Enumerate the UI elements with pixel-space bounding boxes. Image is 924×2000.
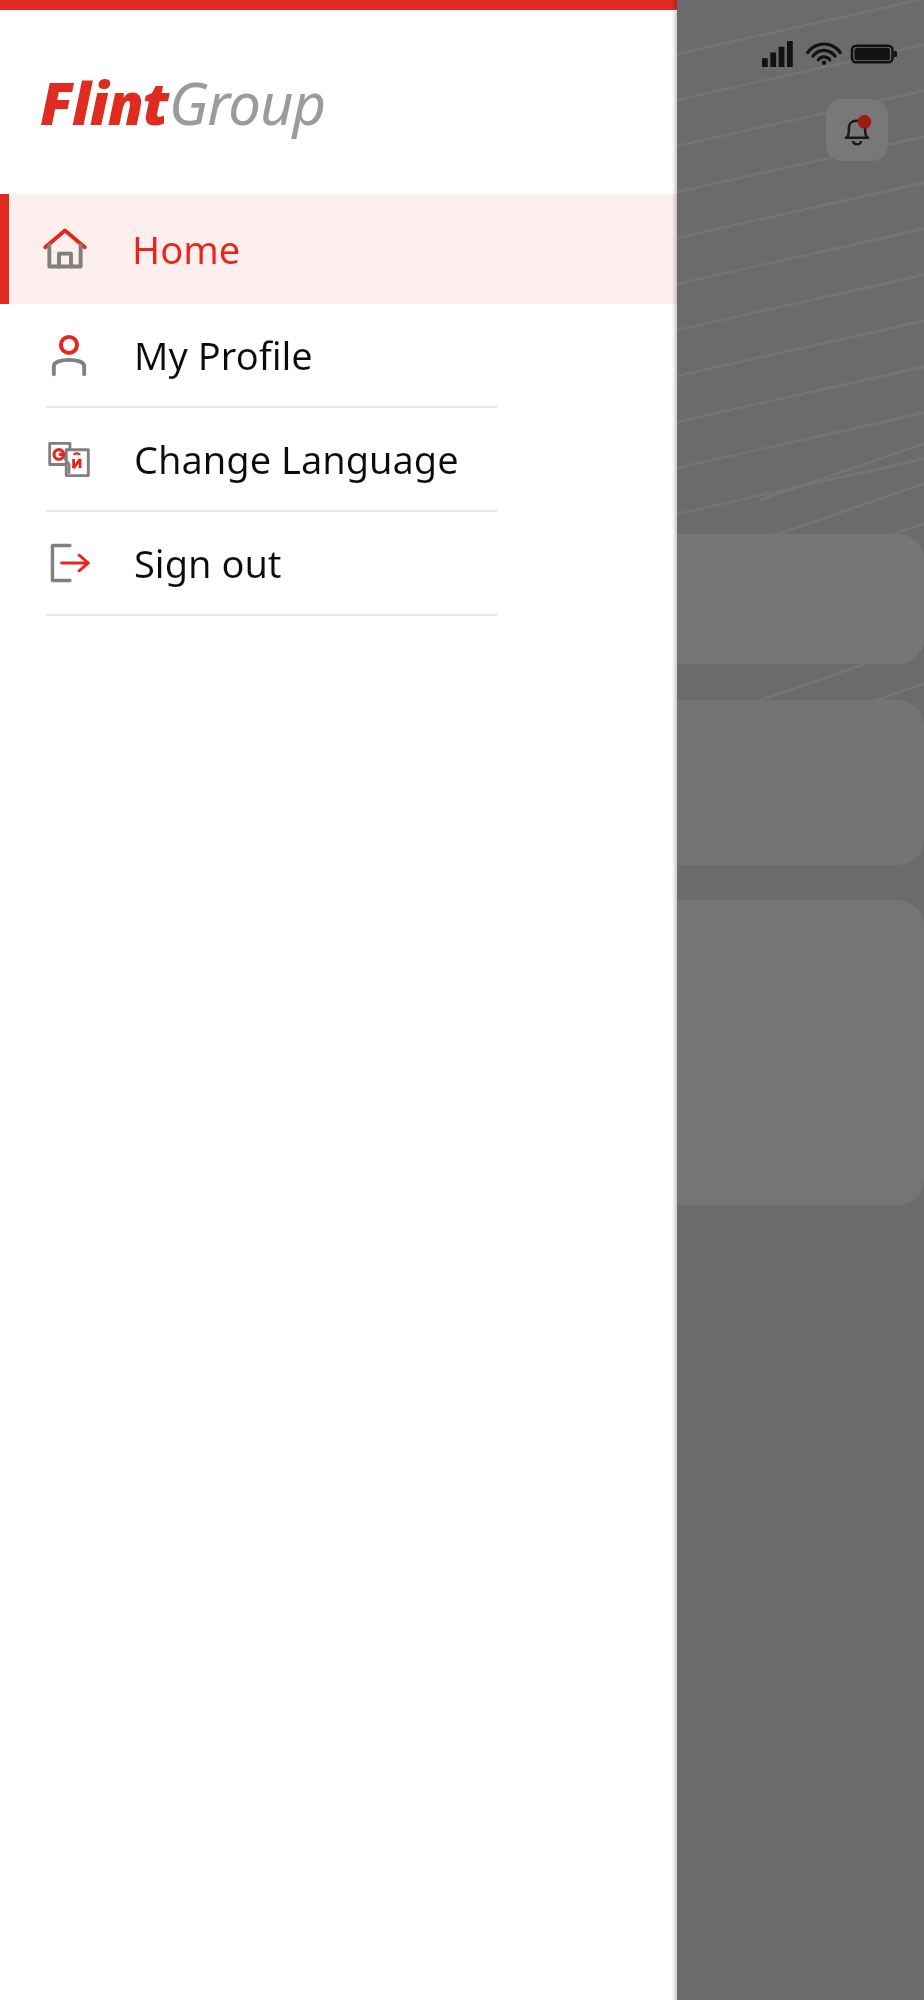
staticText: Home — [132, 223, 241, 275]
staticText: My Profile — [134, 329, 313, 381]
staticText: Change Language — [134, 433, 459, 485]
button[interactable]: Sign out — [0, 512, 677, 614]
button[interactable]: Change Language — [0, 408, 677, 510]
staticText: Sign out — [134, 537, 282, 589]
button[interactable]: Notifications — [826, 99, 888, 161]
staticText: Group — [169, 63, 326, 142]
staticText: Flint — [40, 63, 169, 142]
button[interactable] — [520, 900, 924, 1205]
button[interactable]: Home — [0, 194, 677, 304]
button[interactable] — [520, 700, 924, 865]
button[interactable]: My Profile — [0, 304, 677, 406]
